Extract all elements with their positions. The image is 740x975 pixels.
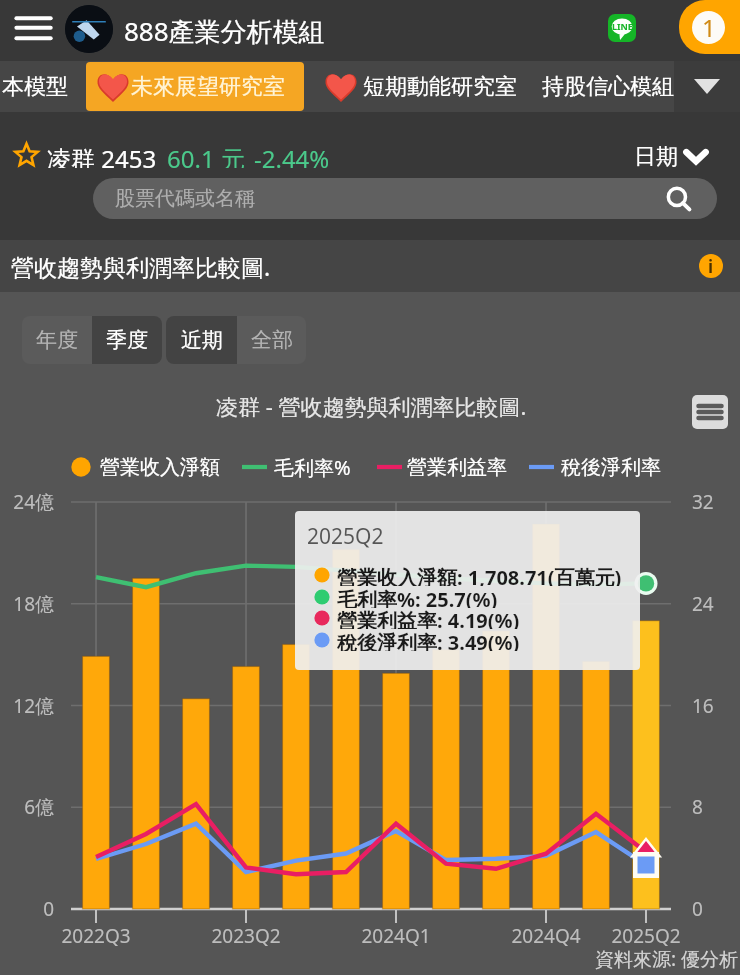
staticText: 1 [702,11,716,44]
button[interactable]: 營業收入淨額 [71,452,223,482]
button[interactable]: 營業利益率 [377,452,507,482]
staticText: 季度 [106,327,148,353]
staticText: 營收趨勢與利潤率比較圖. [11,251,271,282]
staticText: 未來展望研究室 [131,73,285,101]
staticText: 18億 [0,591,54,617]
staticText: LINE [612,20,633,32]
staticText: 股票代碼或名稱 [115,186,255,211]
button[interactable]: 未來展望研究室 [86,62,304,111]
staticText: 資料來源: 優分析 [595,946,739,972]
button[interactable]: Notifications [679,0,740,54]
staticText: 2025Q2 [601,923,691,949]
button[interactable]: 年度 [22,316,92,364]
staticText: 短期動能研究室 [363,73,517,101]
staticText: 全部 [251,327,293,353]
staticText: 2022Q3 [51,923,141,949]
staticText: 6億 [0,794,54,820]
button[interactable]: 本模型 [2,61,72,112]
staticText: 營業收入淨額 [100,455,220,480]
staticText: 凌群 - 營收趨勢與利潤率比較圖. [216,391,527,421]
staticText: 持股信心模組 [542,73,674,101]
staticText: 毛利率%: 25.7(%) [337,586,498,608]
staticText: 24億 [0,489,54,515]
staticText: 營業收入淨額: 1,708.71(百萬元) [337,564,622,586]
staticText: 888產業分析模組 [124,13,325,49]
staticText: 毛利率% [274,454,351,481]
button[interactable]: More tabs [674,61,740,112]
staticText: 32 [692,489,714,515]
button[interactable]: 毛利率% [242,452,350,482]
staticText: 12億 [0,693,54,719]
button[interactable]: Chart menu [692,395,728,429]
button[interactable]: 近期 [166,316,237,364]
staticText: 年度 [36,327,78,353]
staticText: i [708,255,714,278]
staticText: 2023Q2 [201,923,291,949]
button[interactable]: 日期 [634,143,707,169]
button[interactable]: Menu [10,10,56,52]
staticText: 60.1 元 [167,142,245,168]
staticText: 凌群 2453 [47,142,157,168]
staticText: -2.44% [254,142,330,168]
staticText: 8 [692,794,703,820]
staticText: 日期 [634,143,678,169]
staticText: 近期 [181,327,223,353]
button[interactable]: 全部 [237,316,306,364]
staticText: 2025Q2 [307,522,384,551]
button[interactable]: 短期動能研究室 [318,61,518,112]
staticText: 營業利益率 [407,455,507,480]
staticText: 16 [692,693,714,719]
staticText: 營業利益率: 4.19(%) [337,607,520,629]
button[interactable]: 季度 [92,316,162,364]
button[interactable]: LINE [608,14,636,42]
button[interactable]: 股票代碼或名稱 [93,178,717,219]
button[interactable]: 持股信心模組 [542,61,677,112]
button[interactable]: Info [699,254,723,278]
staticText: 0 [0,896,54,922]
staticText: 稅後淨利率 [561,455,661,480]
button[interactable]: 稅後淨利率 [529,452,659,482]
staticText: 2024Q1 [351,923,441,949]
staticText: 24 [692,591,714,617]
staticText: 本模型 [2,73,68,101]
staticText: 0 [692,896,703,922]
button[interactable]: 凌群 2453 [14,142,330,168]
staticText: 2024Q4 [501,923,591,949]
staticText: 稅後淨利率: 3.49(%) [337,629,520,651]
